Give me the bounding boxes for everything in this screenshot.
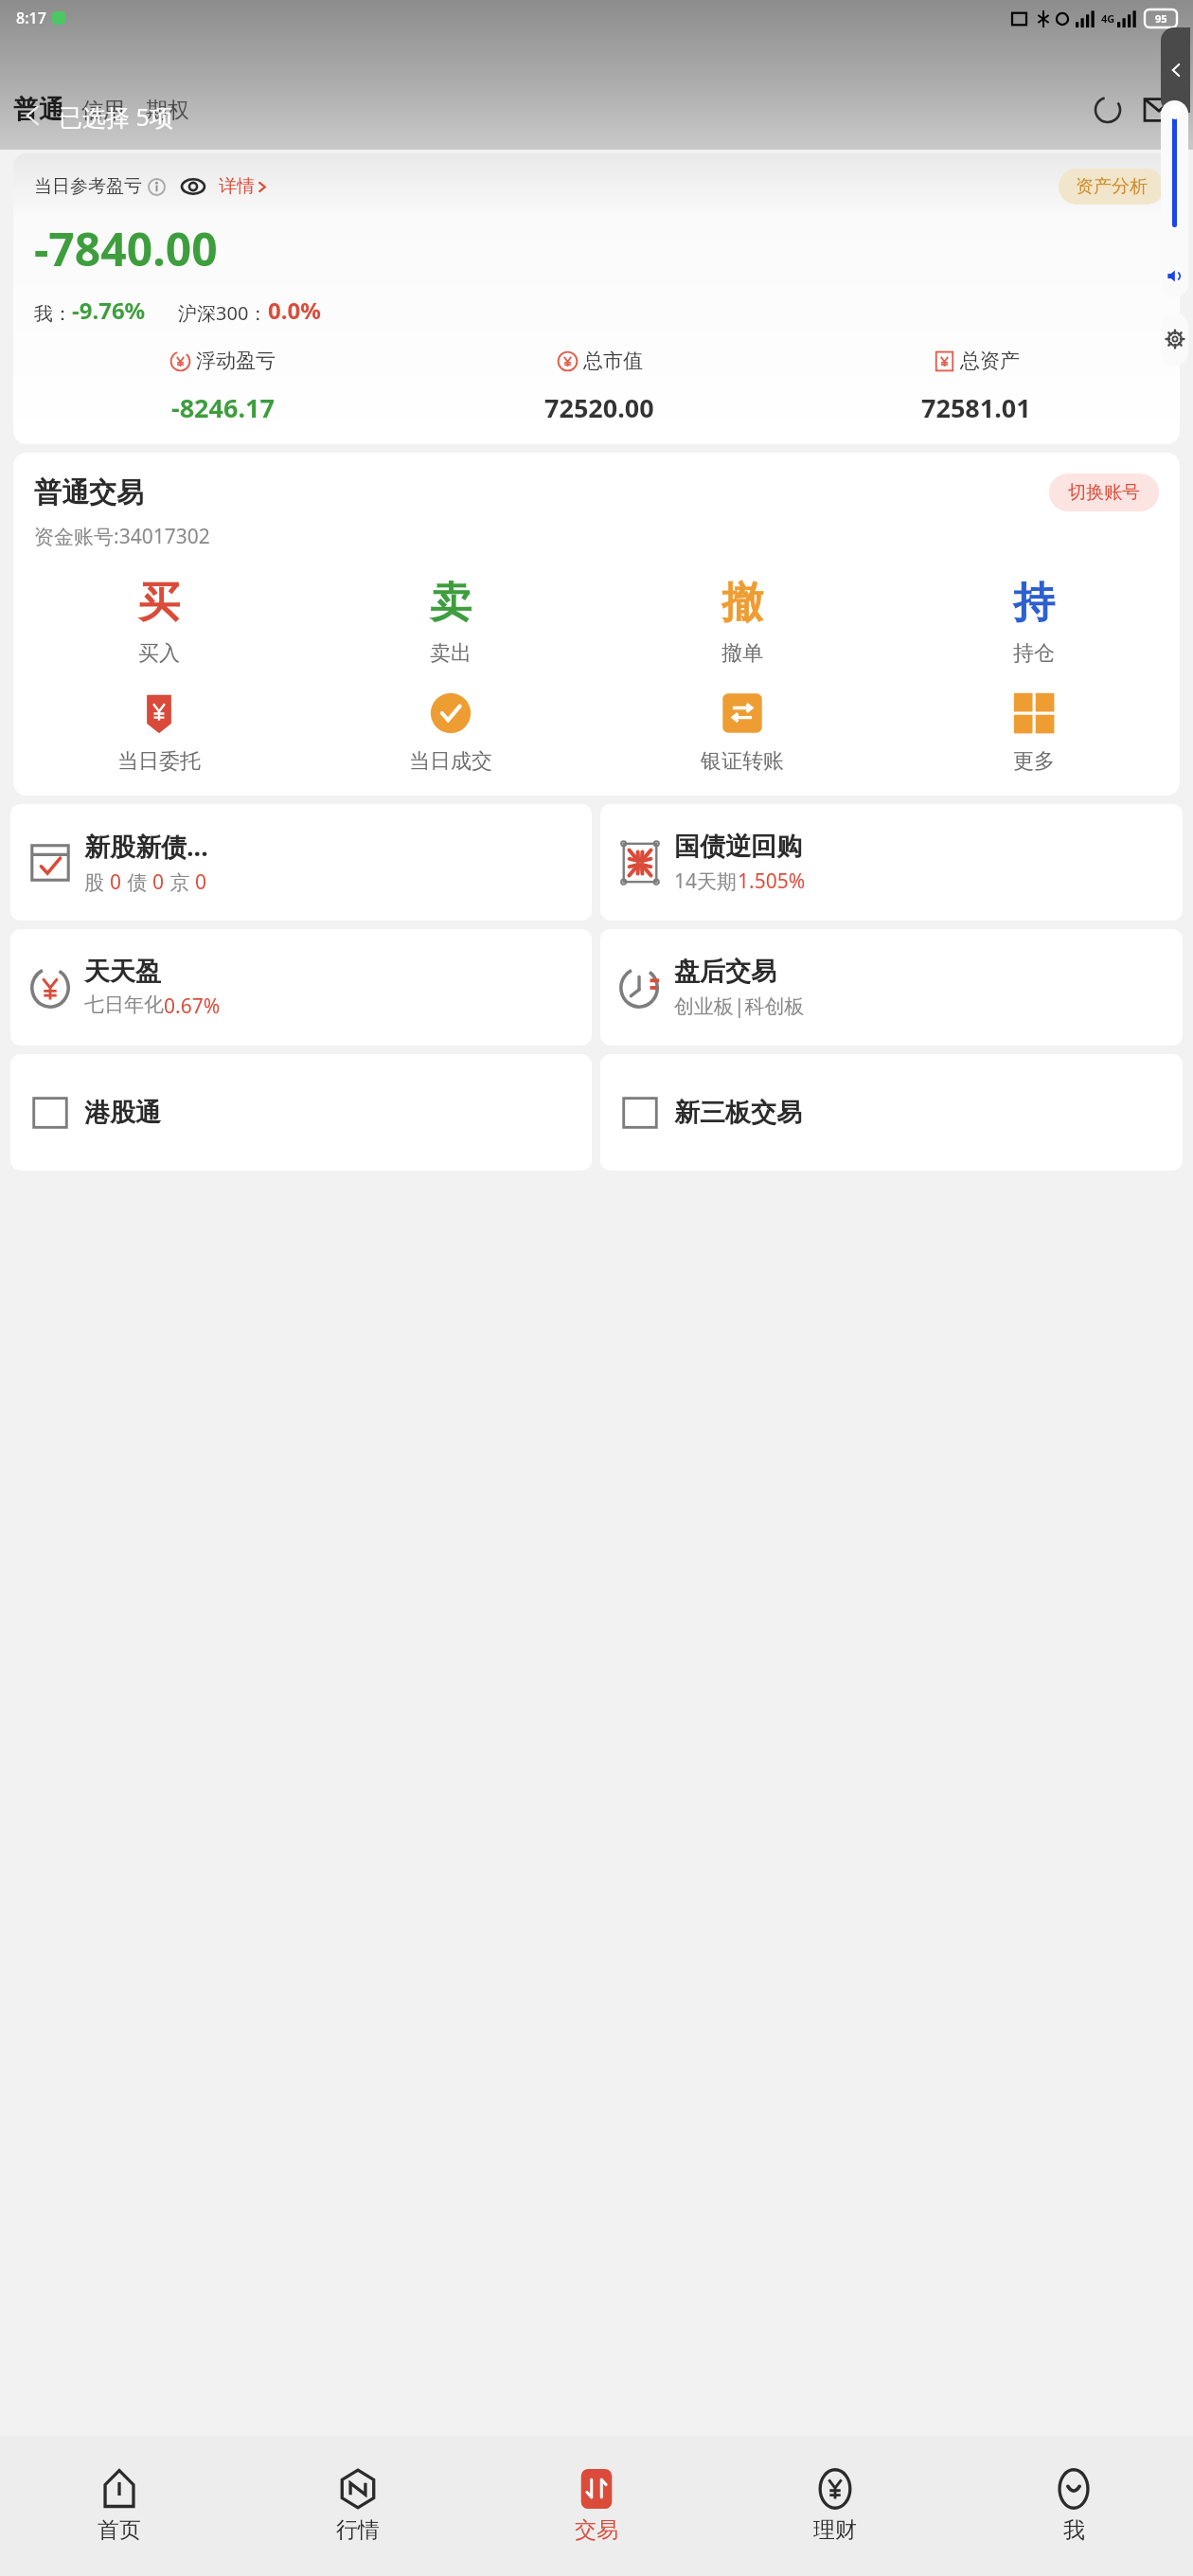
staticText: 新股新债... <box>84 829 208 864</box>
staticText: 0 <box>152 868 165 896</box>
button[interactable]: 卖 <box>305 577 596 667</box>
staticText: 港股通 <box>84 1097 161 1129</box>
staticText: 持仓 <box>1013 640 1055 667</box>
staticText: 卖 <box>430 577 472 629</box>
staticText: -9.76% <box>72 295 146 326</box>
button[interactable]: 天天盈 <box>10 929 592 1046</box>
staticText: 95 <box>1155 11 1167 26</box>
staticText: 已选择 5项 <box>59 100 173 133</box>
staticText: 切换账号 <box>1068 481 1140 504</box>
button[interactable]: 总市值 <box>411 349 788 425</box>
button[interactable]: 新三板交易 <box>600 1054 1183 1171</box>
staticText: 交易 <box>575 2516 618 2544</box>
staticText: 当日委托 <box>117 748 201 775</box>
button[interactable]: 盘后交易 <box>600 929 1183 1046</box>
staticText: 京 <box>165 868 195 896</box>
button[interactable]: 资产分析 <box>1059 169 1165 205</box>
staticText: 撤单 <box>721 640 763 667</box>
staticText: 盘后交易 <box>674 956 776 988</box>
staticText: 新三板交易 <box>674 1097 802 1129</box>
staticText: 4G <box>1101 11 1115 26</box>
staticText: 国债逆回购 <box>674 831 802 863</box>
button[interactable]: 买 <box>13 577 305 667</box>
staticText: 我： <box>34 302 72 326</box>
staticText: 0.67% <box>164 993 221 1020</box>
button[interactable]: 港股通 <box>10 1054 592 1171</box>
staticText: 天天盈 <box>84 956 161 988</box>
button[interactable]: Settings <box>1161 313 1188 366</box>
staticText: 股 <box>84 868 110 896</box>
staticText: 沪深300： <box>178 300 268 326</box>
staticText: 0 <box>195 868 207 896</box>
button[interactable]: Messages <box>1138 89 1180 131</box>
button[interactable]: 更多 <box>888 691 1180 775</box>
button[interactable]: 交易 <box>477 2436 716 2576</box>
button[interactable]: 期权 <box>146 97 189 124</box>
button[interactable]: 撤 <box>596 577 888 667</box>
button[interactable]: 当日委托 <box>13 691 305 775</box>
button[interactable]: Back <box>1161 27 1190 113</box>
staticText: 行情 <box>336 2516 380 2544</box>
staticText: 七日年化 <box>84 993 164 1017</box>
button[interactable]: 浮动盈亏 <box>34 349 411 425</box>
staticText: 详情 <box>219 175 255 198</box>
button[interactable]: 持 <box>888 577 1180 667</box>
button[interactable]: 切换账号 <box>1049 474 1159 511</box>
staticText: 14天期 <box>674 868 738 895</box>
staticText: 我 <box>1063 2516 1085 2544</box>
button[interactable]: 新股新债... <box>10 804 592 921</box>
button[interactable]: 详情 <box>219 175 269 198</box>
button[interactable]: Refresh <box>1089 91 1127 129</box>
button[interactable]: Toggle visibility <box>181 174 205 199</box>
staticText: 买入 <box>138 640 180 667</box>
staticText: 总市值 <box>583 349 643 373</box>
button[interactable]: 理财 <box>716 2436 954 2576</box>
staticText: -7840.00 <box>34 218 218 279</box>
staticText: 0.0% <box>268 295 321 326</box>
button[interactable]: 首页 <box>0 2436 239 2576</box>
button[interactable]: 总资产 <box>788 349 1165 425</box>
button[interactable]: 国债逆回购 <box>600 804 1183 921</box>
staticText: 首页 <box>98 2516 141 2544</box>
staticText: 72520.00 <box>544 390 654 425</box>
staticText: 72581.01 <box>921 390 1031 425</box>
staticText: 总资产 <box>960 349 1020 373</box>
staticText: 卖出 <box>430 640 472 667</box>
staticText: 撤 <box>721 577 763 629</box>
staticText: 理财 <box>813 2516 857 2544</box>
staticText: 银证转账 <box>701 748 784 775</box>
staticText: 更多 <box>1013 748 1055 775</box>
button[interactable]: 信用 <box>81 97 125 124</box>
staticText: 浮动盈亏 <box>196 349 276 373</box>
staticText: 资产分析 <box>1076 175 1148 198</box>
staticText: 1.505% <box>738 868 806 895</box>
button[interactable]: 当日成交 <box>305 691 596 775</box>
button[interactable]: 普通 <box>13 94 64 126</box>
staticText: -8246.17 <box>171 390 275 425</box>
button[interactable]: 我 <box>954 2436 1193 2576</box>
button[interactable]: 银证转账 <box>596 691 888 775</box>
staticText: 资金账号:34017302 <box>34 523 210 550</box>
staticText: 8:17 <box>16 8 46 28</box>
staticText: 0 <box>110 868 122 896</box>
staticText: 当日成交 <box>409 748 492 775</box>
staticText: 普通交易 <box>34 475 144 510</box>
button[interactable]: 行情 <box>239 2436 477 2576</box>
staticText: 持 <box>1013 577 1055 629</box>
staticText: 债 <box>122 868 152 896</box>
staticText: 创业板|科创板 <box>674 993 805 1020</box>
staticText: 当日参考盈亏 <box>34 175 142 198</box>
staticText: 买 <box>138 577 180 629</box>
